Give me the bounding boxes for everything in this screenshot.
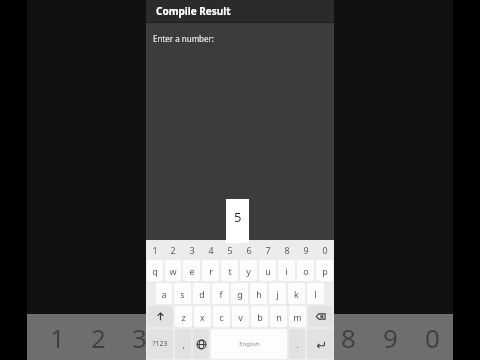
staticText: d bbox=[199, 288, 205, 300]
button[interactable]: q bbox=[147, 260, 163, 281]
staticText: 5 bbox=[234, 208, 242, 226]
staticText: t bbox=[228, 265, 232, 277]
button[interactable]: d bbox=[193, 283, 210, 304]
button[interactable]: 1 bbox=[147, 241, 163, 258]
button[interactable]: 5 bbox=[226, 199, 249, 243]
staticText: 2 bbox=[170, 244, 176, 256]
staticText: . bbox=[296, 339, 299, 350]
button[interactable]: p bbox=[316, 260, 333, 281]
button[interactable]: x bbox=[194, 306, 211, 327]
button[interactable]: English bbox=[211, 329, 287, 359]
button[interactable]: n bbox=[270, 306, 287, 327]
staticText: 3 bbox=[189, 244, 195, 256]
button[interactable]: 0 bbox=[316, 241, 333, 258]
staticText: p bbox=[322, 265, 328, 277]
button[interactable]: o bbox=[297, 260, 314, 281]
staticText: Compile Result bbox=[156, 4, 231, 18]
button[interactable]: 4 bbox=[202, 241, 219, 258]
staticText: ?123 bbox=[152, 339, 168, 349]
staticText: 5 bbox=[215, 320, 230, 355]
staticText: e bbox=[189, 265, 195, 277]
staticText: 1 bbox=[50, 320, 65, 355]
button[interactable]: w bbox=[165, 260, 181, 281]
button[interactable]: m bbox=[289, 306, 306, 327]
staticText: w bbox=[169, 265, 177, 277]
staticText: y bbox=[246, 265, 251, 277]
staticText: 7 bbox=[265, 244, 271, 256]
staticText: 9 bbox=[303, 244, 309, 256]
staticText: r bbox=[209, 265, 213, 277]
button[interactable]: . bbox=[289, 329, 305, 359]
staticText: l bbox=[314, 288, 317, 300]
staticText: b bbox=[257, 311, 263, 323]
button[interactable]: ?123 bbox=[147, 329, 173, 359]
button[interactable]: j bbox=[269, 283, 286, 304]
staticText: 4 bbox=[208, 244, 214, 256]
staticText: 7 bbox=[299, 320, 314, 355]
staticText: 5 bbox=[227, 244, 233, 256]
button[interactable]: u bbox=[259, 260, 276, 281]
staticText: o bbox=[303, 265, 309, 277]
staticText: 2 bbox=[91, 320, 106, 355]
staticText: 6 bbox=[246, 244, 252, 256]
staticText: z bbox=[181, 311, 186, 323]
staticText: 4 bbox=[173, 320, 188, 355]
staticText: v bbox=[238, 311, 243, 323]
staticText: i bbox=[285, 265, 288, 277]
staticText: m bbox=[293, 311, 302, 323]
button[interactable]: Enter bbox=[307, 329, 333, 359]
staticText: 3 bbox=[132, 320, 147, 355]
staticText: , bbox=[182, 339, 185, 350]
button[interactable]: z bbox=[175, 306, 192, 327]
button[interactable]: 9 bbox=[297, 241, 314, 258]
button[interactable]: 6 bbox=[240, 241, 257, 258]
staticText: Enter a number: bbox=[153, 33, 214, 44]
button[interactable]: t bbox=[221, 260, 238, 281]
staticText: n bbox=[276, 311, 282, 323]
staticText: 8 bbox=[341, 320, 356, 355]
staticText: k bbox=[294, 288, 299, 300]
button[interactable]: s bbox=[174, 283, 191, 304]
staticText: 9 bbox=[383, 320, 398, 355]
staticText: 8 bbox=[284, 244, 290, 256]
button[interactable]: i bbox=[278, 260, 295, 281]
button[interactable]: Shift bbox=[147, 306, 173, 327]
staticText: 0 bbox=[425, 320, 440, 355]
button[interactable]: 5 bbox=[221, 241, 238, 258]
staticText: j bbox=[276, 288, 279, 300]
button[interactable]: y bbox=[240, 260, 257, 281]
button[interactable]: g bbox=[231, 283, 248, 304]
button[interactable]: r bbox=[202, 260, 219, 281]
staticText: u bbox=[265, 265, 271, 277]
button[interactable]: a bbox=[156, 283, 172, 304]
staticText: a bbox=[161, 288, 167, 300]
staticText: English bbox=[239, 340, 260, 348]
staticText: c bbox=[219, 311, 224, 323]
button[interactable]: 2 bbox=[165, 241, 181, 258]
staticText: s bbox=[180, 288, 185, 300]
button[interactable]: , bbox=[175, 329, 191, 359]
staticText: h bbox=[256, 288, 262, 300]
button[interactable]: 8 bbox=[278, 241, 295, 258]
staticText: q bbox=[152, 265, 158, 277]
button[interactable]: Backspace bbox=[308, 306, 333, 327]
button[interactable]: Change keyboard bbox=[193, 329, 209, 359]
button[interactable]: 3 bbox=[183, 241, 200, 258]
button[interactable]: f bbox=[212, 283, 229, 304]
staticText: 1 bbox=[152, 244, 158, 256]
button[interactable]: b bbox=[251, 306, 268, 327]
button[interactable]: h bbox=[250, 283, 267, 304]
button[interactable]: v bbox=[232, 306, 249, 327]
button[interactable]: k bbox=[288, 283, 305, 304]
button[interactable]: l bbox=[307, 283, 324, 304]
staticText: 6 bbox=[257, 320, 272, 355]
staticText: g bbox=[237, 288, 243, 300]
button[interactable]: 7 bbox=[259, 241, 276, 258]
button[interactable]: c bbox=[213, 306, 230, 327]
button[interactable]: e bbox=[183, 260, 200, 281]
staticText: 0 bbox=[322, 244, 328, 256]
staticText: f bbox=[219, 288, 223, 300]
staticText: x bbox=[200, 311, 205, 323]
